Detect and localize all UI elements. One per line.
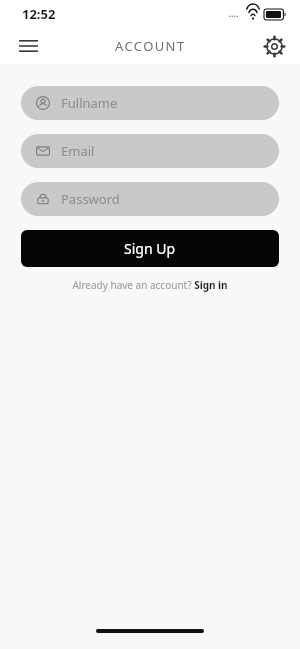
button[interactable]: Password — [21, 182, 279, 216]
staticText: ACCOUNT — [115, 37, 186, 55]
button[interactable]: Settings — [256, 28, 292, 64]
button[interactable]: Sign Up — [21, 230, 279, 267]
button[interactable]: Menu — [10, 28, 46, 64]
staticText: 12:52 — [22, 5, 56, 23]
button[interactable]: Email — [21, 134, 279, 168]
staticText: Email — [61, 142, 95, 160]
staticText: Fullname — [61, 94, 118, 112]
staticText: Already have an account? Sign in — [72, 278, 228, 292]
button[interactable]: Already have an account? Sign in — [0, 278, 300, 292]
staticText: Sign Up — [124, 239, 176, 258]
button[interactable]: Fullname — [21, 86, 279, 120]
staticText: Password — [61, 190, 120, 208]
